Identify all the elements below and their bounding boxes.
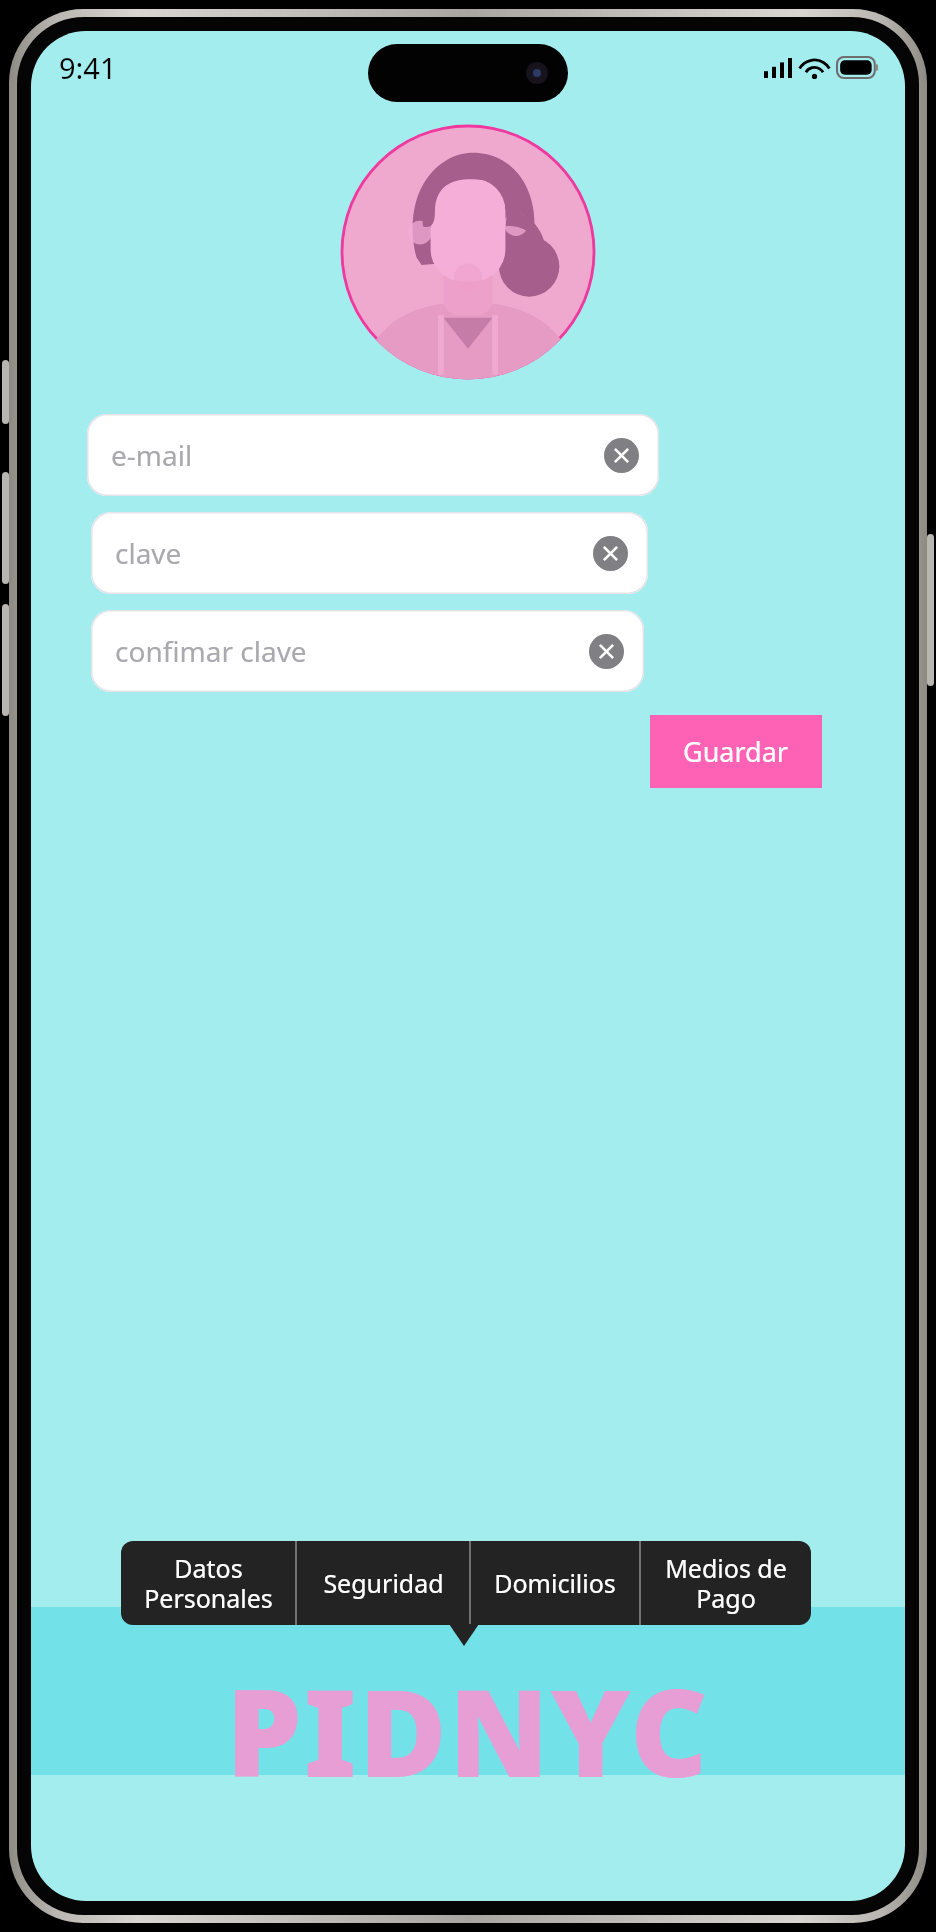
staticText: Datos Personales (144, 1551, 273, 1615)
staticText: Seguridad (323, 1566, 444, 1600)
button[interactable]: Seguridad (297, 1541, 469, 1625)
button[interactable]: Guardar (650, 715, 822, 788)
button[interactable]: e-mail (87, 414, 659, 496)
button[interactable]: Datos Personales (121, 1541, 295, 1625)
button[interactable]: Domicilios (471, 1541, 639, 1625)
staticText: e-mail (111, 436, 193, 474)
button[interactable]: Foto de perfil Viajero (339, 123, 597, 381)
staticText: Domicilios (494, 1566, 616, 1600)
staticText: Guardar (683, 733, 789, 770)
button[interactable]: Borrar confimar clave (589, 634, 624, 669)
button[interactable]: clave (91, 512, 648, 594)
button[interactable]: Medios de Pago (641, 1541, 811, 1625)
button[interactable]: confimar clave (91, 610, 644, 692)
button[interactable]: Borrar clave (593, 536, 628, 571)
staticText: PIDNYC (226, 1649, 710, 1812)
staticText: clave (115, 534, 182, 572)
staticText: confimar clave (115, 632, 307, 670)
button[interactable]: Borrar e-mail (604, 438, 639, 473)
staticText: 9:41 (59, 48, 117, 87)
staticText: Medios de Pago (665, 1551, 787, 1615)
